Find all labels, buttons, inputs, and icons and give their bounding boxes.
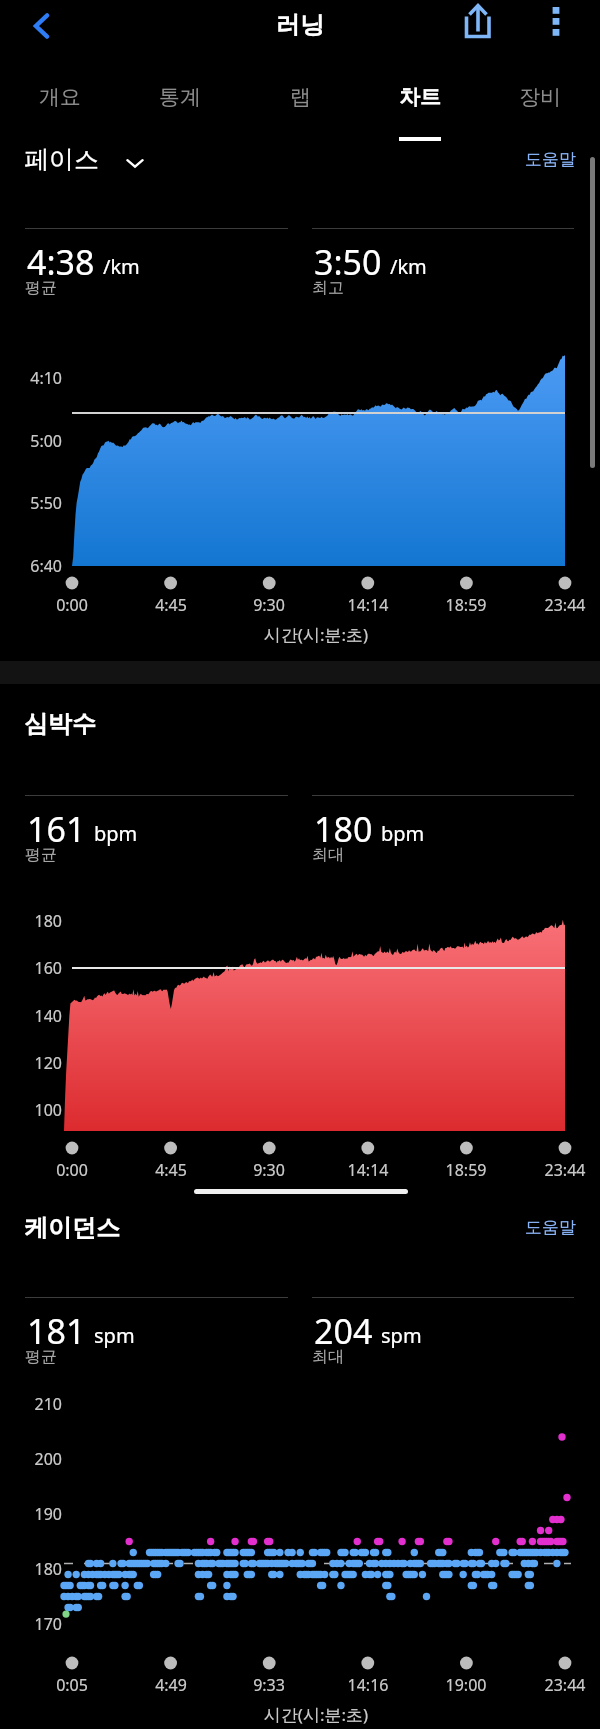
- button[interactable]: 차트: [360, 62, 480, 146]
- staticText: /km: [103, 253, 140, 280]
- staticText: 181: [27, 1308, 86, 1354]
- staticText: 140: [0, 1005, 62, 1027]
- staticText: 0:05: [37, 1674, 107, 1696]
- button[interactable]: 도움말: [500, 149, 576, 170]
- staticText: 러닝: [276, 10, 324, 40]
- staticText: 4:10: [0, 367, 62, 389]
- button[interactable]: 랩: [240, 62, 360, 146]
- staticText: 4:45: [136, 1159, 206, 1181]
- staticText: 3:50: [314, 239, 382, 285]
- staticText: 차트: [399, 84, 441, 110]
- staticText: 케이던스: [24, 1213, 120, 1243]
- staticText: 180: [314, 806, 373, 852]
- staticText: bpm: [381, 820, 425, 847]
- staticText: 시간(시:분:초): [16, 1703, 600, 1726]
- staticText: 180: [0, 1558, 62, 1580]
- button[interactable]: 페이스: [24, 144, 145, 175]
- button[interactable]: 개요: [0, 62, 120, 146]
- staticText: 평균: [25, 278, 57, 298]
- staticText: 심박수: [24, 709, 96, 739]
- staticText: 6:40: [0, 555, 62, 577]
- staticText: 5:00: [0, 430, 62, 452]
- staticText: 평균: [25, 1347, 57, 1367]
- staticText: 최대: [312, 1347, 344, 1367]
- staticText: 161: [27, 806, 86, 852]
- staticText: 160: [0, 957, 62, 979]
- staticText: 0:00: [37, 594, 107, 616]
- staticText: 23:44: [530, 1674, 600, 1696]
- staticText: 도움말: [500, 149, 576, 170]
- staticText: /km: [390, 253, 427, 280]
- staticText: 장비: [519, 84, 561, 110]
- staticText: 평균: [25, 845, 57, 865]
- staticText: 23:44: [530, 1159, 600, 1181]
- button[interactable]: More options: [527, 0, 584, 47]
- staticText: 120: [0, 1052, 62, 1074]
- staticText: 페이스: [24, 144, 99, 175]
- staticText: 시간(시:분:초): [16, 623, 600, 646]
- staticText: 204: [314, 1308, 373, 1354]
- staticText: 랩: [290, 84, 311, 110]
- button[interactable]: 통계: [120, 62, 240, 146]
- button[interactable]: 도움말: [500, 1217, 576, 1238]
- staticText: 190: [0, 1503, 62, 1525]
- staticText: 180: [0, 910, 62, 932]
- staticText: 170: [0, 1613, 62, 1635]
- staticText: 5:50: [0, 492, 62, 514]
- staticText: 4:38: [27, 239, 95, 285]
- staticText: 9:30: [234, 594, 304, 616]
- staticText: 4:45: [136, 594, 206, 616]
- staticText: 통계: [159, 84, 201, 110]
- button[interactable]: Back: [13, 0, 71, 53]
- staticText: 최대: [312, 845, 344, 865]
- staticText: 14:14: [333, 1159, 403, 1181]
- staticText: 210: [0, 1393, 62, 1415]
- staticText: 19:00: [431, 1674, 501, 1696]
- staticText: 9:30: [234, 1159, 304, 1181]
- staticText: 4:49: [136, 1674, 206, 1696]
- button[interactable]: 장비: [480, 62, 600, 146]
- staticText: spm: [94, 1322, 135, 1349]
- staticText: 0:00: [37, 1159, 107, 1181]
- staticText: spm: [381, 1322, 422, 1349]
- staticText: 14:16: [333, 1674, 403, 1696]
- staticText: 9:33: [234, 1674, 304, 1696]
- staticText: 개요: [39, 84, 81, 110]
- staticText: 도움말: [500, 1217, 576, 1238]
- staticText: 18:59: [431, 1159, 501, 1181]
- staticText: 14:14: [333, 594, 403, 616]
- staticText: 200: [0, 1448, 62, 1470]
- staticText: 최고: [312, 278, 344, 298]
- staticText: 18:59: [431, 594, 501, 616]
- staticText: 23:44: [530, 594, 600, 616]
- button[interactable]: Share: [447, 0, 504, 44]
- staticText: 100: [0, 1099, 62, 1121]
- staticText: bpm: [94, 820, 138, 847]
